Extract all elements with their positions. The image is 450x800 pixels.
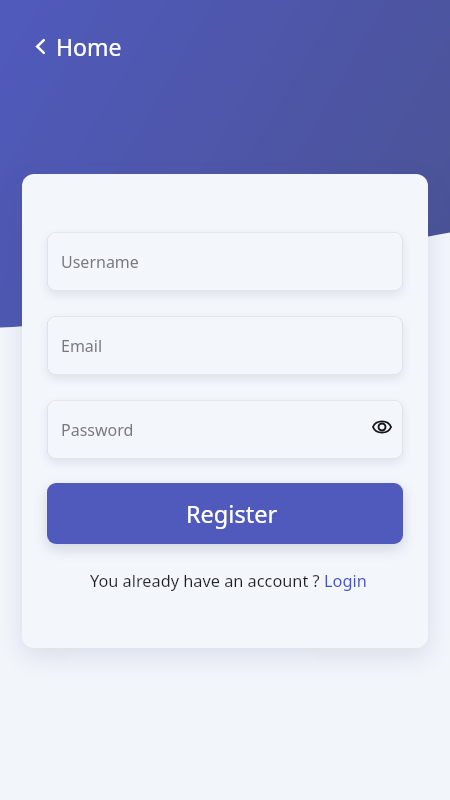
button[interactable]: Email <box>47 316 403 375</box>
button[interactable]: Register <box>47 483 403 544</box>
button[interactable]: Show password <box>367 412 397 442</box>
button[interactable]: Username <box>47 232 403 291</box>
button[interactable]: Password <box>47 400 403 459</box>
button[interactable]: Login <box>324 570 367 592</box>
staticText: You already have an account ? <box>90 570 324 592</box>
staticText: Password <box>61 419 134 441</box>
staticText: Login <box>324 570 367 592</box>
button[interactable]: Back to Home <box>30 27 128 66</box>
staticText: Username <box>61 251 139 273</box>
staticText: Register <box>186 498 278 530</box>
staticText: Email <box>61 335 103 357</box>
staticText: Home <box>56 31 122 62</box>
